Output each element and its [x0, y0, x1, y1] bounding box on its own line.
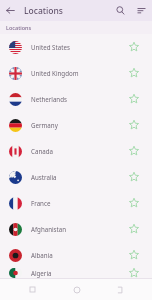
staticText: United States: [31, 43, 125, 51]
button[interactable]: Home: [66, 279, 87, 300]
button[interactable]: United States: [0, 34, 152, 60]
button[interactable]: Favorite France: [125, 194, 143, 212]
button[interactable]: Favorite Afghanistan: [125, 220, 143, 238]
staticText: France: [31, 199, 125, 207]
button[interactable]: Favorite Germany: [125, 116, 143, 134]
button[interactable]: Afghanistan: [0, 216, 152, 242]
staticText: Locations: [24, 5, 63, 17]
button[interactable]: Favorite United States: [125, 38, 143, 56]
button[interactable]: Favorite Netherlands: [125, 90, 143, 108]
button[interactable]: Filter: [131, 0, 152, 21]
button[interactable]: Netherlands: [0, 86, 152, 112]
button[interactable]: Albania: [0, 242, 152, 268]
staticText: Canada: [31, 147, 125, 155]
staticText: Albania: [31, 251, 125, 259]
staticText: Locations: [6, 24, 32, 31]
button[interactable]: United Kingdom: [0, 60, 152, 86]
button[interactable]: Canada: [0, 138, 152, 164]
staticText: Algeria: [31, 269, 125, 277]
staticText: Australia: [31, 173, 125, 181]
button[interactable]: Back: [109, 279, 130, 300]
button[interactable]: Back: [0, 0, 21, 21]
button[interactable]: Favorite Algeria: [125, 268, 143, 278]
button[interactable]: Recents: [22, 279, 43, 300]
button[interactable]: Favorite Albania: [125, 246, 143, 264]
staticText: Afghanistan: [31, 225, 125, 233]
staticText: Germany: [31, 121, 125, 129]
staticText: Netherlands: [31, 95, 125, 103]
button[interactable]: Favorite Australia: [125, 168, 143, 186]
button[interactable]: Australia: [0, 164, 152, 190]
button[interactable]: Favorite United Kingdom: [125, 64, 143, 82]
button[interactable]: Germany: [0, 112, 152, 138]
button[interactable]: Search: [110, 0, 131, 21]
button[interactable]: Favorite Canada: [125, 142, 143, 160]
button[interactable]: Algeria: [0, 268, 152, 278]
button[interactable]: France: [0, 190, 152, 216]
staticText: United Kingdom: [31, 69, 125, 77]
